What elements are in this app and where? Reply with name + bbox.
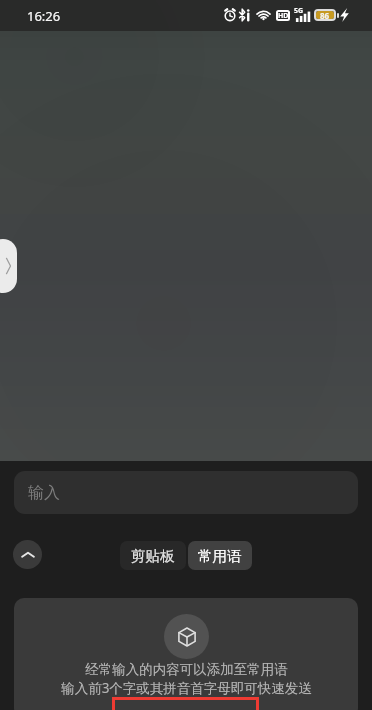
staticText: HD [278, 11, 289, 21]
button[interactable]: Collapse [13, 540, 42, 569]
staticText: 经常输入的内容可以添加至常用语 [85, 661, 288, 678]
staticText: 输入 [28, 483, 60, 503]
button[interactable]: 剪贴板 [120, 541, 186, 570]
button[interactable]: Expand panel [0, 239, 17, 293]
staticText: 输入前3个字或其拼音首字母即可快速发送 [61, 679, 312, 697]
staticText: 5G [294, 6, 304, 16]
button[interactable]: 常用语 [188, 541, 252, 570]
button[interactable]: 输入 [14, 471, 358, 514]
staticText: 常用语 [198, 547, 242, 565]
staticText: 16:26 [27, 7, 61, 25]
staticText: 86 [320, 10, 330, 21]
staticText: 剪贴板 [131, 547, 175, 565]
